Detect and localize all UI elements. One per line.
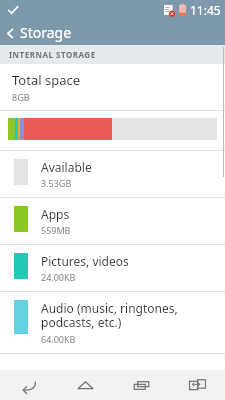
staticText: Audio (music, ringtones, podcasts, etc.)	[41, 300, 178, 331]
button[interactable]: Back	[0, 370, 57, 400]
staticText: INTERNAL STORAGE	[9, 49, 96, 60]
staticText: Available	[41, 159, 92, 175]
button[interactable]: Pictures, videos	[0, 245, 225, 291]
staticText: Apps	[41, 206, 70, 222]
button[interactable]: Total space	[0, 64, 225, 110]
button[interactable]: Home	[57, 370, 113, 400]
button[interactable]: Dual window	[169, 370, 225, 400]
button[interactable]: Recents	[113, 370, 169, 400]
staticText: 8GB	[12, 91, 30, 103]
button[interactable]: Audio (music, ringtones, podcasts, etc.)	[0, 292, 225, 353]
button[interactable]: Available	[0, 151, 225, 197]
staticText: 11:45	[190, 2, 221, 18]
button[interactable]: Back	[0, 23, 20, 43]
staticText: 559MB	[41, 224, 71, 236]
staticText: 3.53GB	[41, 177, 72, 189]
staticText: 24.00KB	[41, 271, 76, 283]
staticText: Storage	[20, 23, 72, 42]
staticText: Pictures, videos	[41, 253, 129, 269]
button[interactable]: Apps	[0, 198, 225, 244]
staticText: Total space	[12, 71, 80, 89]
button[interactable]: Back	[0, 20, 225, 45]
staticText: 64.00KB	[41, 333, 76, 345]
